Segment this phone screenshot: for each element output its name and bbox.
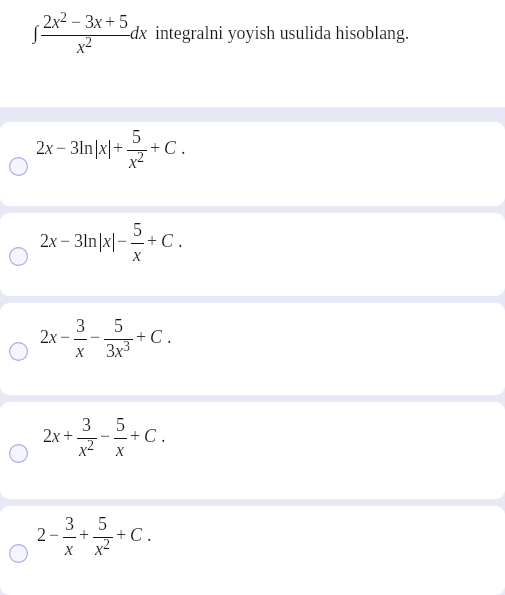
staticText: 5: [119, 12, 128, 32]
staticText: 5: [116, 415, 125, 435]
staticText: −: [117, 231, 128, 251]
staticText: .: [147, 525, 152, 545]
staticText: 3: [65, 514, 74, 534]
staticText: 3x: [85, 12, 102, 32]
staticText: 2x: [36, 138, 53, 158]
staticText: +: [116, 525, 127, 545]
staticText: x: [65, 539, 73, 559]
staticText: −: [100, 426, 111, 446]
button[interactable]: 2: [0, 506, 505, 595]
button[interactable]: 2x: [0, 213, 505, 296]
staticText: .: [181, 138, 186, 158]
staticText: 2x: [43, 426, 60, 446]
staticText: x2: [95, 536, 111, 559]
staticText: +: [136, 327, 147, 347]
staticText: −: [60, 231, 71, 251]
staticText: .: [167, 327, 172, 347]
staticText: −: [71, 12, 82, 32]
staticText: x: [116, 440, 124, 460]
staticText: C: [161, 231, 174, 251]
staticText: x2: [129, 149, 145, 172]
button[interactable]: 2x: [0, 402, 505, 499]
staticText: +: [79, 525, 90, 545]
staticText: 5: [132, 127, 141, 147]
staticText: C: [150, 327, 163, 347]
staticText: x2: [77, 34, 93, 57]
staticText: −: [49, 525, 60, 545]
staticText: +: [63, 426, 74, 446]
staticText: 2: [37, 525, 46, 545]
staticText: integralni yoyish usulida hisoblang.: [155, 23, 410, 43]
button[interactable]: 2x: [0, 122, 505, 206]
staticText: +: [147, 231, 158, 251]
staticText: +: [150, 138, 161, 158]
staticText: 2x2: [43, 9, 68, 32]
staticText: 5: [98, 514, 107, 534]
staticText: −: [56, 138, 67, 158]
staticText: 3: [76, 316, 85, 336]
staticText: 3ln: [70, 138, 94, 158]
staticText: 5: [114, 316, 123, 336]
staticText: x: [99, 138, 107, 158]
staticText: 2x: [40, 327, 57, 347]
staticText: 3ln: [74, 231, 98, 251]
staticText: 5: [133, 220, 142, 240]
staticText: C: [130, 525, 143, 545]
staticText: ∫: [33, 22, 39, 43]
button[interactable]: 2x: [0, 303, 505, 395]
staticText: dx: [130, 23, 147, 43]
staticText: .: [178, 231, 183, 251]
staticText: 3: [82, 415, 91, 435]
staticText: x: [76, 341, 84, 361]
staticText: 2x: [40, 231, 57, 251]
staticText: +: [105, 12, 116, 32]
staticText: x2: [79, 437, 95, 460]
staticText: .: [161, 426, 166, 446]
staticText: −: [60, 327, 71, 347]
staticText: −: [90, 327, 101, 347]
staticText: x: [133, 245, 141, 265]
staticText: +: [130, 426, 141, 446]
staticText: C: [144, 426, 157, 446]
staticText: C: [164, 138, 177, 158]
staticText: 3x3: [106, 338, 131, 361]
staticText: +: [113, 138, 124, 158]
staticText: x: [103, 231, 111, 251]
